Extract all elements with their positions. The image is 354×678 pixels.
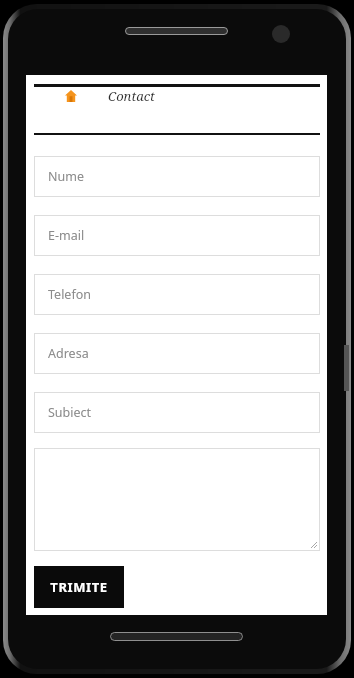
staticText: Nume — [48, 168, 84, 185]
staticText: Adresa — [48, 345, 89, 362]
staticText: Telefon — [48, 286, 91, 303]
button[interactable]: Subiect — [34, 392, 320, 433]
staticText: Subiect — [48, 404, 92, 421]
button[interactable]: E-mail — [34, 215, 320, 256]
button[interactable]: TRIMITE — [34, 566, 124, 608]
button[interactable] — [34, 448, 320, 551]
button[interactable]: Nume — [34, 156, 320, 197]
button[interactable]: Telefon — [34, 274, 320, 315]
button[interactable]: Contact — [108, 87, 155, 105]
staticText: TRIMITE — [50, 578, 108, 596]
staticText: E-mail — [48, 227, 85, 244]
button[interactable]: Home — [62, 87, 80, 105]
staticText: Contact — [108, 87, 155, 105]
button[interactable]: Adresa — [34, 333, 320, 374]
